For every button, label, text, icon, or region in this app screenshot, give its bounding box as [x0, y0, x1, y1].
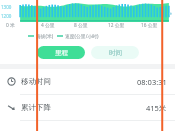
other: Moving time: [7, 77, 16, 86]
staticText: 里程: [55, 49, 68, 57]
button[interactable]: 里程: [37, 46, 85, 59]
staticText: 时间: [109, 49, 122, 57]
staticText: 4 公里: [41, 22, 55, 29]
staticText: 移动时间: [21, 77, 51, 86]
staticText: 1200: [1, 13, 12, 19]
other: Descent: [7, 103, 16, 112]
button[interactable]: Moving time: [0, 69, 175, 94]
button[interactable]: Descent: [0, 95, 175, 120]
staticText: 1300: [1, 4, 12, 10]
staticText: 0 米: [6, 22, 15, 29]
button[interactable]: 时间: [91, 46, 139, 59]
staticText: 8 公里: [74, 22, 88, 29]
staticText: 08:03:31: [137, 77, 167, 87]
staticText: 速度(公里/小时): [65, 33, 99, 40]
staticText: 415米: [146, 103, 167, 113]
staticText: 16 公里: [141, 22, 158, 29]
staticText: 累计下降: [21, 103, 51, 112]
staticText: 海拔(米): [36, 33, 54, 40]
staticText: 12 公里: [108, 22, 125, 29]
